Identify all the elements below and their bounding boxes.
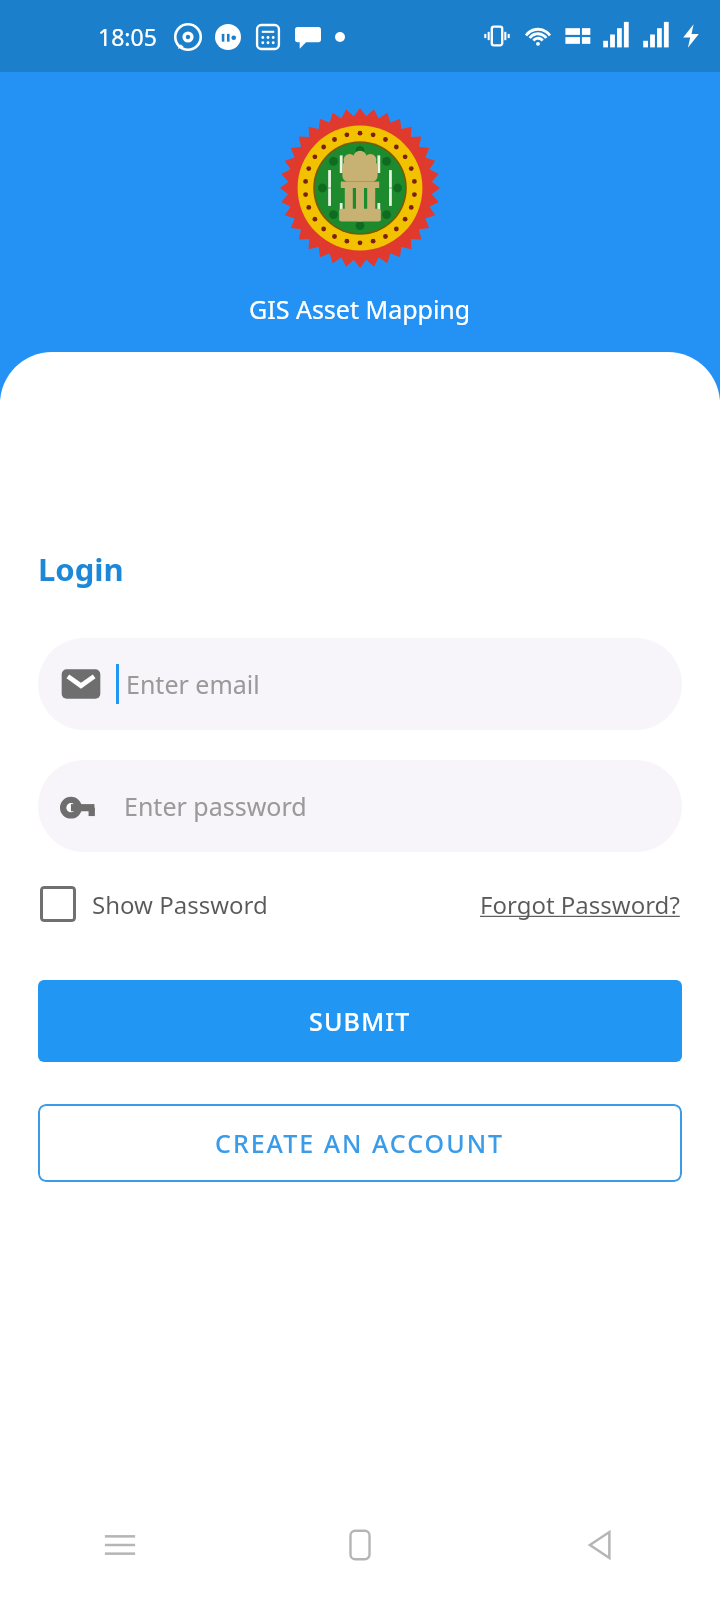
button[interactable]: SUBMIT xyxy=(38,980,682,1062)
button[interactable]: Enter email xyxy=(38,638,682,730)
staticText: Enter email xyxy=(126,667,260,701)
staticText: GIS Asset Mapping xyxy=(249,292,471,326)
button[interactable]: Forgot Password? xyxy=(478,882,682,927)
button[interactable]: Enter password xyxy=(38,760,682,852)
staticText: Enter password xyxy=(124,789,307,823)
button[interactable]: Recents xyxy=(0,1490,240,1600)
staticText: CREATE AN ACCOUNT xyxy=(215,1126,505,1160)
staticText: Forgot Password? xyxy=(480,888,680,921)
button[interactable]: Home xyxy=(240,1490,480,1600)
staticText: SUBMIT xyxy=(309,1004,411,1038)
staticText: Show Password xyxy=(92,888,268,921)
button[interactable]: CREATE AN ACCOUNT xyxy=(38,1104,682,1182)
button[interactable]: Back xyxy=(480,1490,720,1600)
staticText: Login xyxy=(38,548,124,590)
button[interactable]: Show Password xyxy=(38,880,270,928)
staticText: 18:05 xyxy=(98,21,157,52)
